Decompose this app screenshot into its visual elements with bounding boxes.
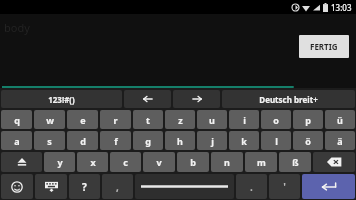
- button[interactable]: h: [165, 131, 195, 150]
- staticText: ü: [337, 114, 343, 126]
- button[interactable]: r: [100, 110, 131, 129]
- button[interactable]: o: [261, 110, 291, 129]
- staticText: t: [146, 114, 150, 126]
- staticText: s: [47, 135, 52, 147]
- button[interactable]: c: [110, 152, 141, 172]
- button[interactable]: e: [67, 110, 98, 129]
- button[interactable]: FERTIG: [299, 35, 349, 58]
- staticText: q: [14, 114, 20, 126]
- button[interactable]: n: [211, 152, 243, 172]
- button[interactable]: ö: [293, 131, 323, 150]
- button[interactable]: y: [44, 152, 75, 172]
- staticText: z: [178, 114, 183, 126]
- button[interactable]: Switch keyboard: [35, 174, 67, 199]
- staticText: d: [80, 135, 86, 147]
- button[interactable]: m: [245, 152, 277, 172]
- staticText: ö: [305, 135, 311, 147]
- staticText: x: [90, 156, 96, 168]
- button[interactable]: f: [100, 131, 131, 150]
- button[interactable]: Move cursor right: [173, 90, 220, 108]
- button[interactable]: u: [197, 110, 227, 129]
- button[interactable]: i: [229, 110, 259, 129]
- button[interactable]: Shift: [1, 152, 42, 172]
- button[interactable]: q: [1, 110, 32, 129]
- staticText: h: [177, 135, 183, 147]
- button[interactable]: ': [269, 174, 300, 199]
- button[interactable]: w: [34, 110, 65, 129]
- button[interactable]: ß: [279, 152, 311, 172]
- staticText: e: [80, 114, 86, 126]
- staticText: l: [275, 135, 278, 147]
- button[interactable]: 123!#(): [1, 90, 122, 108]
- staticText: body: [4, 20, 30, 35]
- button[interactable]: s: [34, 131, 65, 150]
- staticText: p: [305, 114, 311, 126]
- staticText: g: [145, 135, 151, 147]
- staticText: ,: [116, 180, 119, 194]
- button[interactable]: z: [165, 110, 195, 129]
- staticText: 13:03: [331, 2, 352, 13]
- staticText: ä: [337, 135, 343, 147]
- staticText: v: [156, 156, 162, 168]
- button[interactable]: b: [177, 152, 209, 172]
- staticText: k: [241, 135, 247, 147]
- staticText: FERTIG: [310, 41, 338, 52]
- button[interactable]: .: [236, 174, 267, 199]
- staticText: o: [273, 114, 279, 126]
- staticText: y: [57, 156, 63, 168]
- staticText: u: [209, 114, 215, 126]
- staticText: w: [46, 114, 54, 126]
- button[interactable]: Space: [135, 174, 234, 199]
- staticText: i: [243, 114, 246, 126]
- staticText: ß: [292, 156, 299, 168]
- button[interactable]: l: [261, 131, 291, 150]
- button[interactable]: k: [229, 131, 259, 150]
- staticText: n: [224, 156, 230, 168]
- staticText: 123!#(): [48, 94, 75, 105]
- button[interactable]: ?: [69, 174, 100, 199]
- staticText: ?: [82, 180, 87, 194]
- button[interactable]: Backspace: [313, 152, 355, 172]
- staticText: .: [250, 180, 253, 194]
- staticText: ': [283, 180, 286, 194]
- button[interactable]: x: [77, 152, 108, 172]
- button[interactable]: d: [67, 131, 98, 150]
- staticText: j: [211, 135, 214, 147]
- button[interactable]: ,: [102, 174, 133, 199]
- button[interactable]: Enter: [302, 174, 355, 199]
- button[interactable]: ä: [325, 131, 355, 150]
- staticText: r: [113, 114, 118, 126]
- button[interactable]: a: [1, 131, 32, 150]
- staticText: Deutsch breit+: [259, 94, 318, 105]
- staticText: f: [114, 135, 118, 147]
- button[interactable]: v: [143, 152, 175, 172]
- staticText: c: [123, 156, 128, 168]
- button[interactable]: Emoji: [1, 174, 33, 199]
- button[interactable]: ü: [325, 110, 355, 129]
- button[interactable]: p: [293, 110, 323, 129]
- button[interactable]: g: [133, 131, 163, 150]
- staticText: a: [14, 135, 20, 147]
- button[interactable]: t: [133, 110, 163, 129]
- staticText: m: [257, 156, 266, 168]
- staticText: b: [190, 156, 196, 168]
- button[interactable]: Move cursor left: [124, 90, 171, 108]
- button[interactable]: Deutsch breit+: [222, 90, 355, 108]
- button[interactable]: j: [197, 131, 227, 150]
